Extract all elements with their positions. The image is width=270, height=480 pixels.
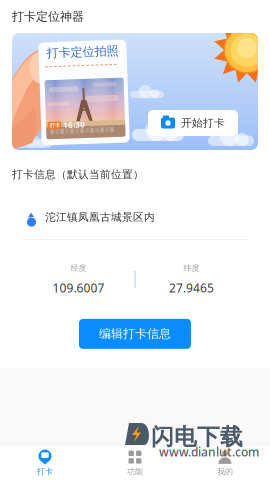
staticText: 打卡定位拍照 bbox=[48, 45, 120, 59]
staticText: 27.9465 bbox=[169, 280, 214, 296]
button[interactable]: 我的 bbox=[180, 446, 270, 480]
staticText: 编辑打卡信息 bbox=[99, 326, 171, 341]
button[interactable]: 功能 bbox=[90, 446, 180, 480]
staticText: 16:30 bbox=[62, 119, 84, 130]
button[interactable]: 打卡 bbox=[0, 446, 90, 480]
staticText: 109.6007 bbox=[52, 280, 104, 296]
staticText: 功能 bbox=[127, 467, 143, 476]
staticText: 打卡 bbox=[37, 467, 53, 476]
staticText: 打卡信息（默认当前位置） bbox=[12, 168, 144, 181]
staticText: 纬度 bbox=[183, 263, 199, 273]
staticText: 打卡定位神器 bbox=[12, 9, 84, 24]
button[interactable]: 开始打卡 bbox=[148, 110, 238, 136]
staticText: 开始打卡 bbox=[181, 116, 225, 129]
staticText: 我的 bbox=[217, 467, 233, 476]
staticText: 闪电下载 bbox=[151, 423, 243, 451]
button[interactable]: 编辑打卡信息 bbox=[79, 319, 191, 349]
staticText: 打卡 bbox=[48, 121, 58, 128]
button[interactable]: 沱江镇凤凰古城景区内 bbox=[0, 181, 270, 224]
staticText: 经度 bbox=[70, 263, 86, 273]
staticText: 沱江镇凤凰古城景区内 bbox=[45, 211, 155, 224]
staticText: www.dianlut.com bbox=[159, 444, 259, 460]
